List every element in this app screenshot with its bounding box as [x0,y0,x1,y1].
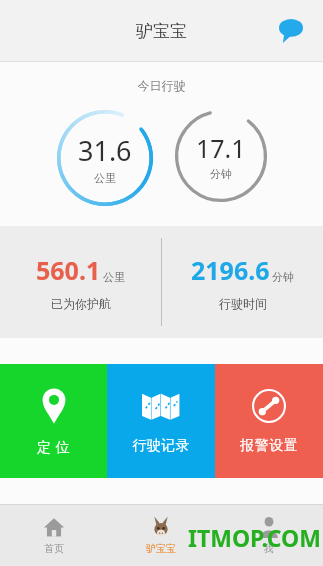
staticText: 报警设置 [240,437,298,455]
staticText: 分钟 [210,167,232,181]
staticText: 今日行驶 [0,78,323,93]
staticText: 17.1 [196,131,246,165]
button[interactable]: Profile [215,504,323,566]
button[interactable]: Alarm settings [215,364,323,478]
staticText: 31.6 [78,132,132,169]
staticText: 驴宝宝 [146,542,176,555]
staticText: 分钟 [272,270,294,284]
button[interactable]: Locate [0,364,107,478]
staticText: 公里 [103,270,125,284]
button[interactable]: Trip records [107,364,215,478]
button[interactable]: Mascot [107,504,215,566]
staticText: 首页 [44,542,64,555]
staticText: 2196.6 [191,253,270,287]
staticText: 已为你护航 [51,296,111,311]
staticText: 公里 [94,171,116,185]
button[interactable]: 560.1 [0,226,161,338]
staticText: 驴宝宝 [0,21,323,42]
staticText: 定 位 [37,437,71,456]
button[interactable]: 2196.6 [162,226,323,338]
button[interactable]: Messages [273,13,309,49]
staticText: 560.1 [36,253,101,287]
staticText: ITMOP.COM [188,522,321,553]
button[interactable]: Home [0,504,107,566]
staticText: 行驶记录 [132,437,190,455]
staticText: 行驶时间 [219,296,267,311]
staticText: 我 [264,542,274,555]
